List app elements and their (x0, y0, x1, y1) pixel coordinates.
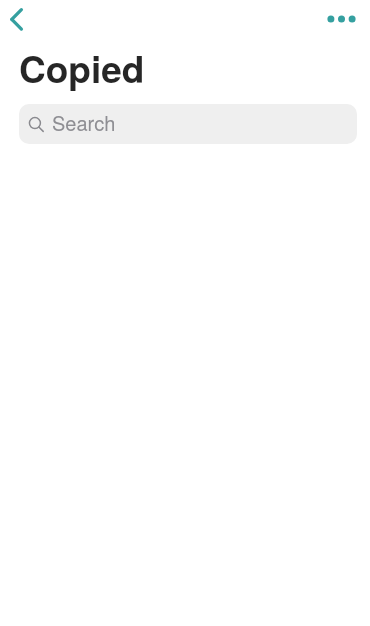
staticText: Copied (19, 41, 145, 94)
staticText: Search (52, 108, 116, 137)
button[interactable]: More options (325, 2, 357, 34)
button[interactable]: Back (0, 3, 32, 35)
button[interactable]: Search (19, 104, 357, 144)
